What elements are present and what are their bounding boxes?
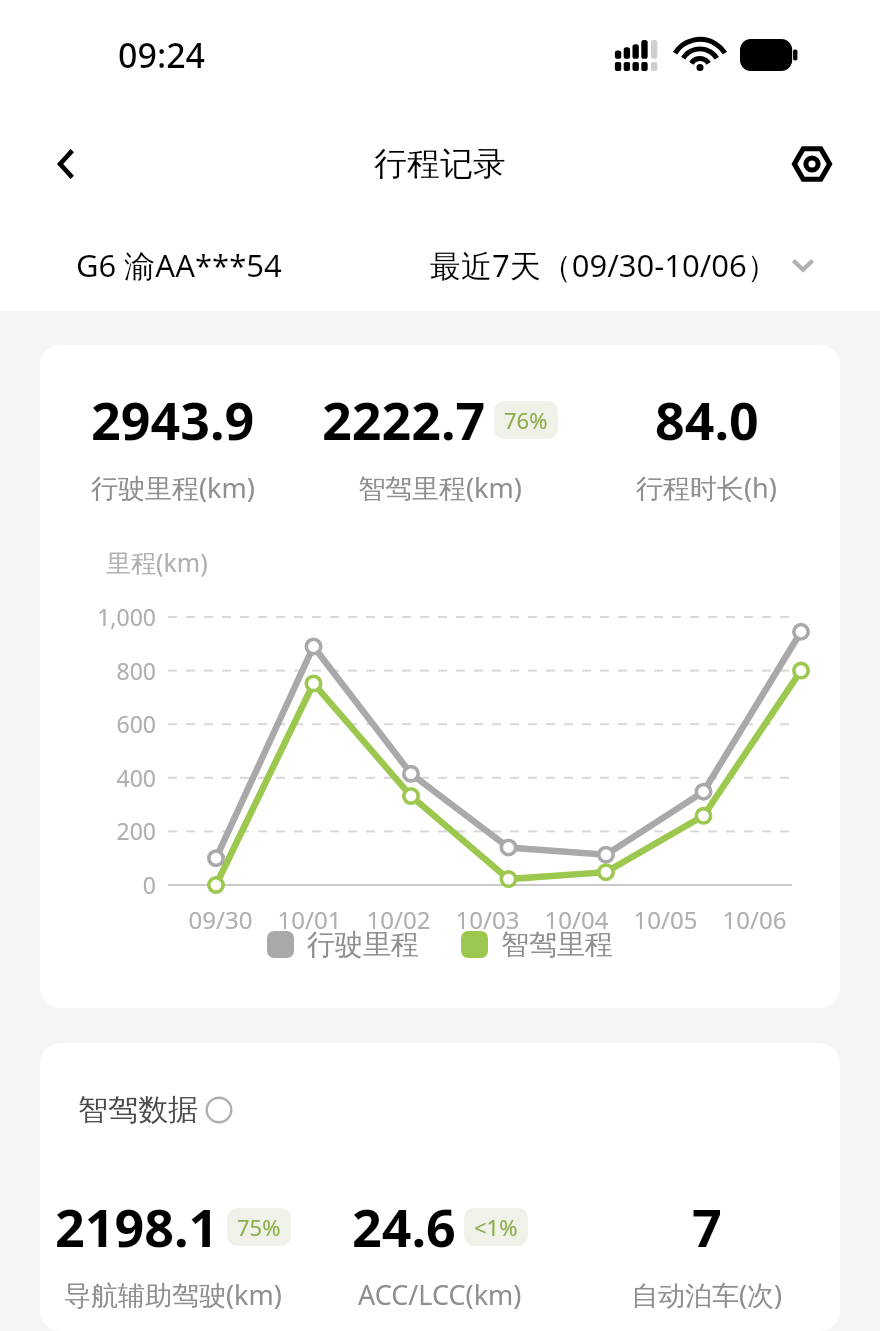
button[interactable]: 7 — [573, 1191, 840, 1313]
button[interactable]: 24.6 — [306, 1191, 573, 1313]
staticText: G6 渝AA***54 — [76, 244, 282, 286]
staticText: 7 — [692, 1191, 722, 1262]
staticText: 10/06 — [710, 903, 799, 936]
staticText: 里程(km) — [106, 545, 208, 579]
staticText: 76% — [504, 405, 548, 435]
staticText: 10/05 — [621, 903, 710, 936]
button[interactable]: G6 渝AA***54 — [0, 218, 880, 311]
staticText: 智驾里程 — [501, 927, 613, 962]
staticText: 2943.9 — [91, 384, 255, 455]
staticText: 行程记录 — [374, 143, 506, 185]
staticText: 84.0 — [655, 384, 759, 455]
staticText: 1,000 — [40, 601, 156, 632]
other: Help — [205, 1096, 233, 1124]
button[interactable]: Settings — [784, 136, 840, 192]
staticText: 75% — [237, 1212, 281, 1242]
staticText: 自动泊车(次) — [631, 1276, 783, 1313]
staticText: 800 — [40, 655, 156, 686]
staticText: 智驾里程(km) — [358, 469, 522, 506]
staticText: 10/01 — [265, 903, 354, 936]
staticText: 09/30 — [176, 903, 265, 936]
button[interactable]: 2198.1 — [40, 1191, 306, 1313]
staticText: 行驶里程(km) — [91, 469, 255, 506]
button[interactable]: 智驾数据 — [78, 1091, 233, 1129]
staticText: <1% — [474, 1212, 518, 1242]
button[interactable]: 84.0 — [573, 384, 840, 506]
staticText: 0 — [40, 869, 156, 900]
staticText: 24.6 — [352, 1191, 456, 1262]
staticText: 2198.1 — [55, 1191, 219, 1262]
staticText: 600 — [40, 708, 156, 739]
staticText: 09:24 — [118, 32, 206, 78]
staticText: 10/04 — [532, 903, 621, 936]
staticText: 行程时长(h) — [636, 469, 777, 506]
staticText: ACC/LCC(km) — [358, 1276, 522, 1313]
button[interactable]: 2943.9 — [40, 384, 306, 506]
staticText: 2222.7 — [322, 384, 486, 455]
staticText: 10/02 — [354, 903, 443, 936]
staticText: 200 — [40, 815, 156, 846]
staticText: 行驶里程 — [307, 927, 419, 962]
staticText: 10/03 — [443, 903, 532, 936]
staticText: 最近7天（09/30-10/06） — [430, 244, 778, 286]
staticText: 400 — [40, 762, 156, 793]
staticText: 导航辅助驾驶(km) — [64, 1276, 282, 1313]
button[interactable]: Back — [36, 135, 94, 193]
button[interactable]: 2222.7 — [306, 384, 573, 506]
staticText: 智驾数据 — [78, 1091, 198, 1129]
